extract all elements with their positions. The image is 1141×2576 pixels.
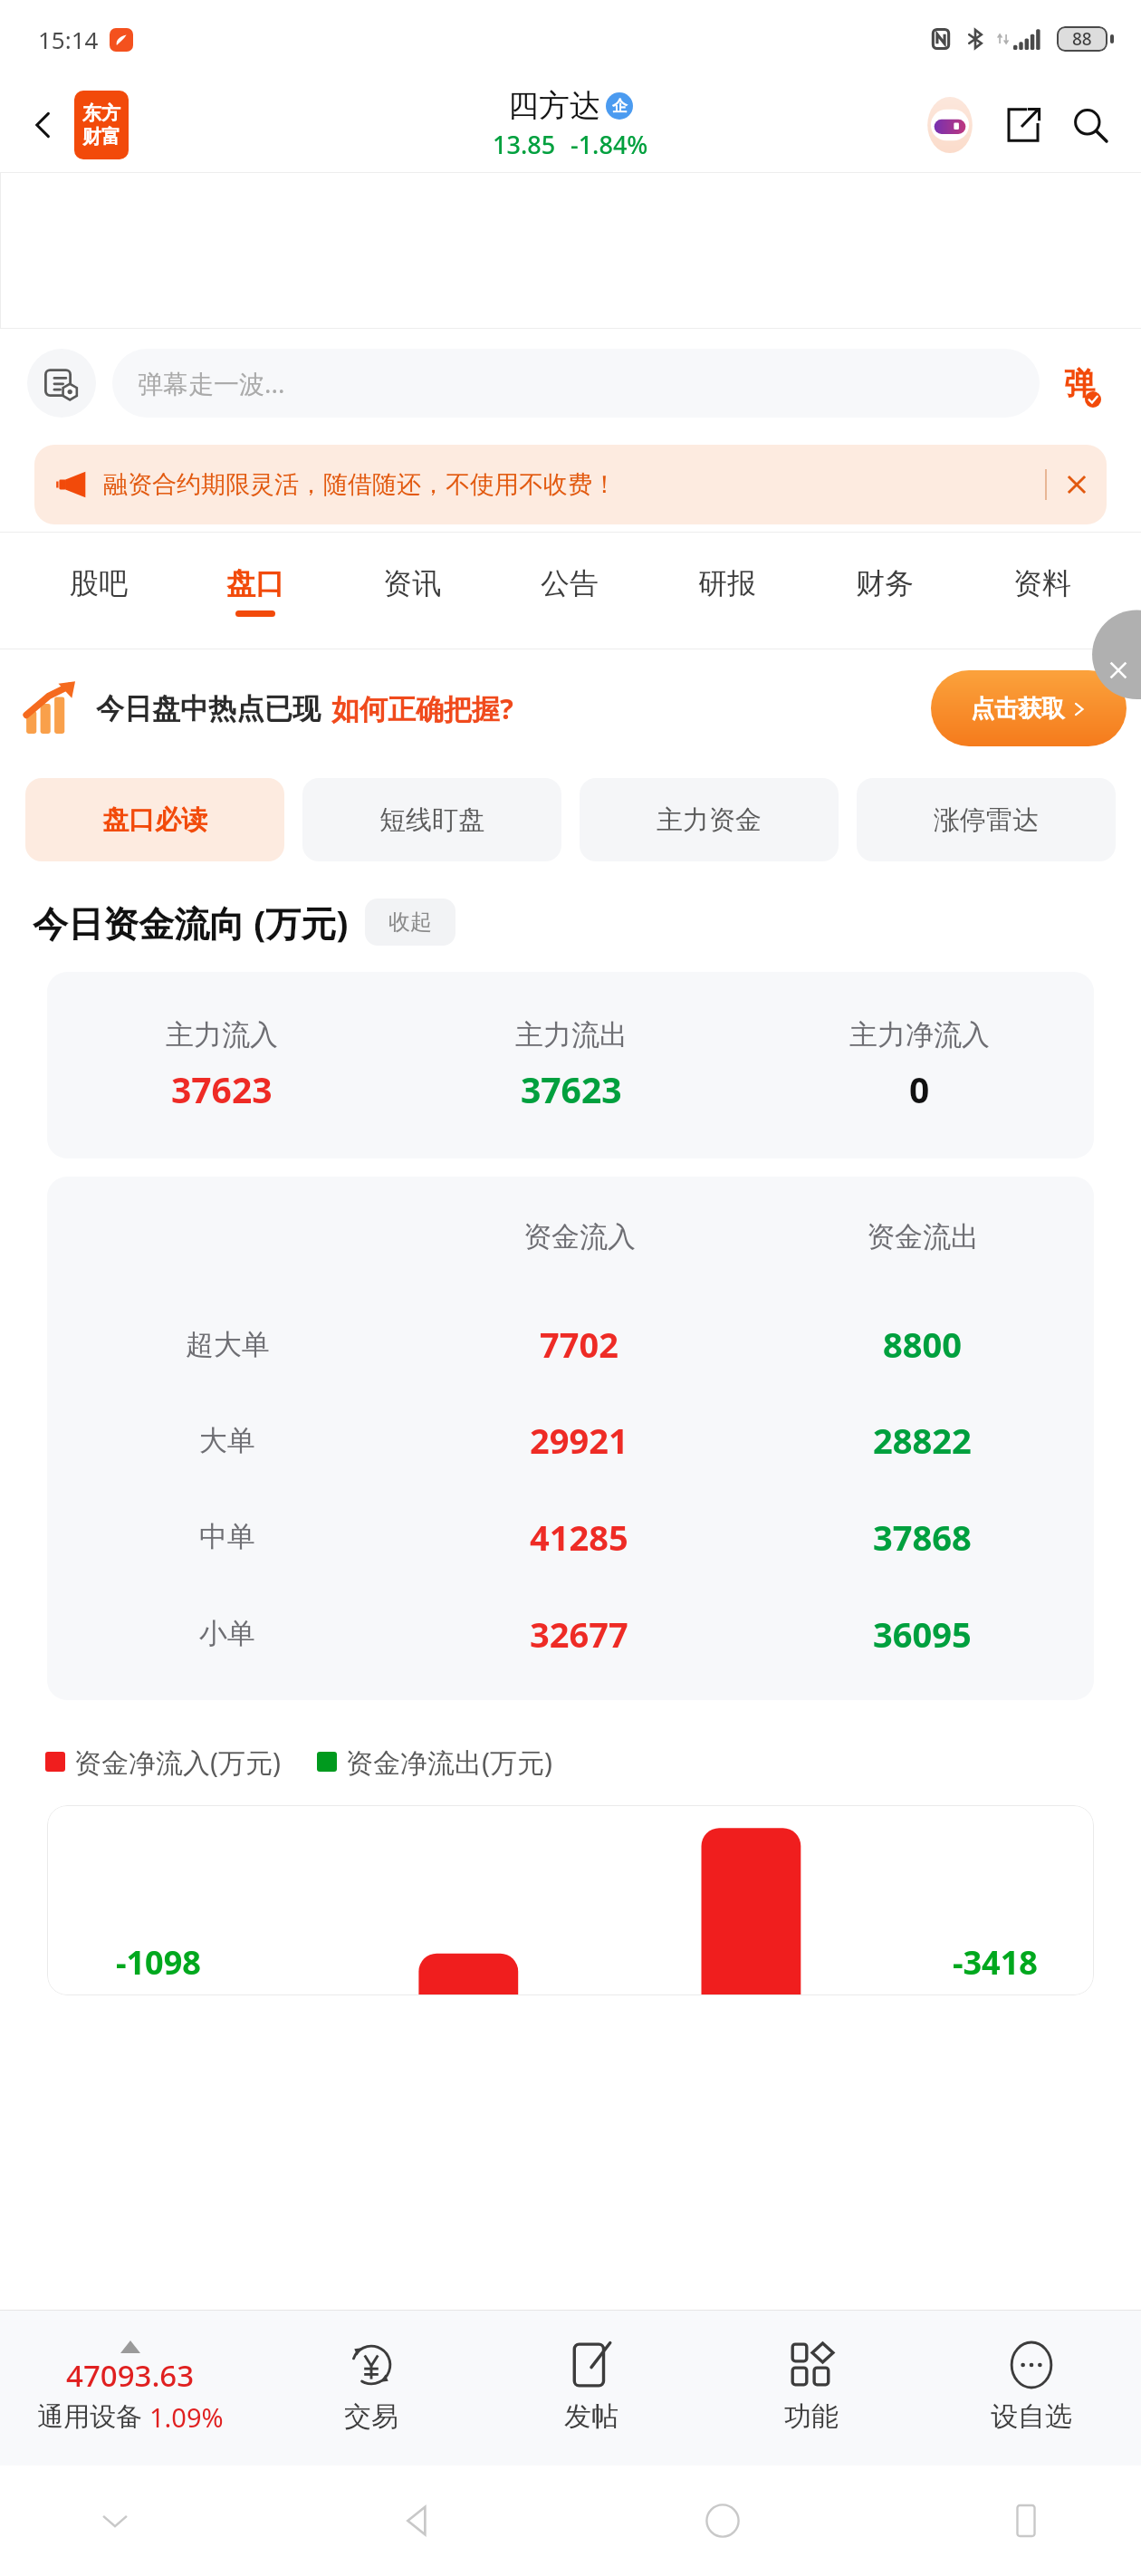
- staticText: 主力净流入: [849, 1017, 990, 1053]
- staticText: 13.85: [493, 128, 556, 161]
- staticText: 47093.63: [66, 2355, 195, 2396]
- staticText: 主力流出: [515, 1017, 628, 1053]
- staticText: 盘口: [226, 565, 284, 601]
- staticText: 资金净流出(万元): [346, 1744, 552, 1781]
- button[interactable]: 盘口必读: [25, 778, 284, 861]
- staticText: 今日资金流向 (万元): [33, 899, 349, 947]
- staticText: 中单: [199, 1519, 255, 1554]
- staticText: 主力流入: [166, 1017, 278, 1053]
- button[interactable]: Search: [1061, 96, 1119, 154]
- staticText: 涨停雷达: [934, 803, 1039, 837]
- staticText: 资金流出: [867, 1219, 979, 1254]
- staticText: 点击获取: [971, 694, 1065, 724]
- staticText: 四方达: [508, 86, 600, 125]
- staticText: 研报: [698, 565, 756, 601]
- staticText: 如何正确把握?: [331, 689, 513, 727]
- button[interactable]: 融资合约期限灵活，随借随还，不使用不收费！: [34, 445, 1107, 524]
- button[interactable]: 主力流入: [47, 972, 1094, 1158]
- staticText: 29921: [530, 1417, 628, 1464]
- button[interactable]: 研报: [648, 532, 806, 649]
- staticText: 股吧: [70, 565, 128, 601]
- staticText: 28822: [873, 1417, 972, 1464]
- staticText: -3418: [953, 1940, 1038, 1985]
- staticText: 今日盘中热点已现: [96, 691, 321, 726]
- button[interactable]: 点击获取: [931, 670, 1127, 746]
- staticText: 弹: [1064, 364, 1095, 403]
- staticText: 主力资金: [657, 803, 762, 837]
- staticText: -1098: [116, 1940, 201, 1985]
- staticText: 弹幕走一波...: [138, 366, 285, 400]
- staticText: 资金流入: [523, 1219, 636, 1254]
- staticText: 公告: [541, 565, 599, 601]
- button[interactable]: Close ad: [1088, 649, 1141, 702]
- staticText: 东方: [82, 101, 120, 125]
- staticText: 8800: [883, 1321, 962, 1368]
- staticText: 37868: [873, 1514, 972, 1561]
- button[interactable]: 涨停雷达: [857, 778, 1116, 861]
- button[interactable]: 股吧: [20, 532, 177, 649]
- staticText: 36095: [873, 1610, 972, 1658]
- staticText: 设自选: [991, 2399, 1072, 2434]
- button[interactable]: 47093.63: [0, 2310, 261, 2465]
- staticText: 交易: [344, 2399, 398, 2434]
- button[interactable]: Share: [994, 96, 1052, 154]
- button[interactable]: 资讯: [333, 532, 491, 649]
- button[interactable]: 功能: [701, 2310, 921, 2465]
- staticText: 37623: [521, 1065, 622, 1113]
- staticText: 7702: [540, 1321, 618, 1368]
- staticText: 资料: [1013, 565, 1071, 601]
- staticText: 短线盯盘: [379, 803, 484, 837]
- staticText: 发帖: [564, 2399, 618, 2434]
- button[interactable]: Send barrage: [1045, 349, 1114, 418]
- staticText: 盘口必读: [102, 803, 207, 837]
- button[interactable]: 发帖: [481, 2310, 701, 2465]
- button[interactable]: 短线盯盘: [302, 778, 561, 861]
- staticText: 财富: [82, 125, 120, 149]
- button[interactable]: Orders: [27, 349, 96, 418]
- staticText: 收起: [388, 908, 432, 936]
- button[interactable]: 收起: [365, 899, 455, 946]
- staticText: 88: [1072, 27, 1092, 51]
- staticText: 功能: [784, 2399, 839, 2434]
- button[interactable]: 盘口: [177, 532, 333, 649]
- button[interactable]: Back: [16, 98, 71, 152]
- staticText: 资金净流入(万元): [74, 1744, 281, 1781]
- staticText: 融资合约期限灵活，随借随还，不使用不收费！: [103, 469, 617, 500]
- button[interactable]: 公告: [491, 532, 648, 649]
- button[interactable]: 弹幕走一波...: [112, 349, 1040, 418]
- button[interactable]: 东方: [74, 91, 129, 159]
- staticText: 32677: [530, 1610, 628, 1658]
- button[interactable]: 交易: [261, 2310, 481, 2465]
- staticText: 资讯: [383, 565, 441, 601]
- staticText: 通用设备: [37, 2400, 142, 2434]
- staticText: 大单: [199, 1423, 255, 1458]
- staticText: 财务: [856, 565, 914, 601]
- staticText: -1.84%: [570, 128, 648, 161]
- button[interactable]: -1098: [47, 1805, 1094, 1995]
- staticText: 1.09%: [149, 2399, 224, 2435]
- button[interactable]: AI assistant: [918, 93, 982, 157]
- button[interactable]: Close banner: [1047, 445, 1107, 524]
- staticText: 15:14: [38, 24, 99, 55]
- button[interactable]: 资料: [964, 532, 1121, 649]
- button[interactable]: 主力资金: [580, 778, 839, 861]
- button[interactable]: 资金流入: [47, 1177, 1094, 1700]
- staticText: 0: [909, 1065, 930, 1113]
- button[interactable]: 财务: [806, 532, 964, 649]
- staticText: 41285: [530, 1514, 628, 1561]
- button[interactable]: 今日盘中热点已现: [24, 649, 1127, 767]
- staticText: 37623: [171, 1065, 273, 1113]
- staticText: 超大单: [186, 1327, 270, 1362]
- staticText: 企: [612, 97, 628, 116]
- button[interactable]: 设自选: [921, 2310, 1141, 2465]
- staticText: 小单: [199, 1616, 255, 1651]
